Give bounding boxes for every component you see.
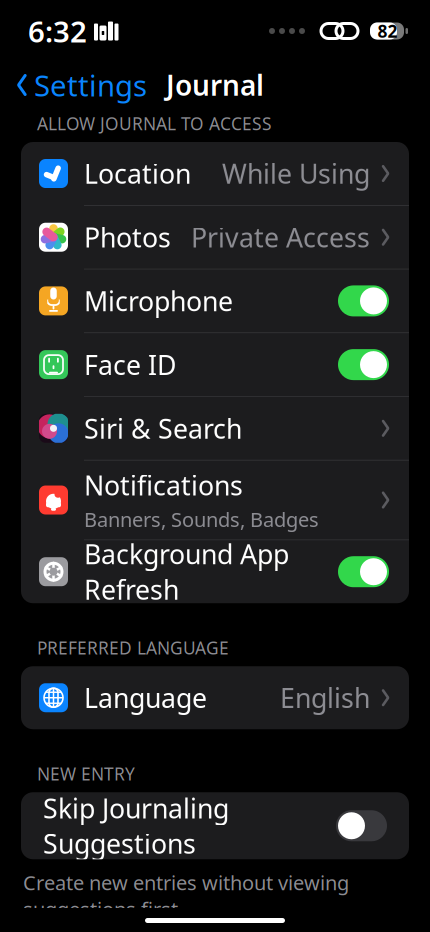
button[interactable]: Settings [8,57,147,112]
staticText: PREFERRED LANGUAGE [37,636,229,659]
staticText: Settings [34,65,147,104]
staticText: Banners, Sounds, Badges [84,506,319,532]
staticText: Journal [166,66,264,104]
staticText: 82 [377,19,397,42]
staticText: English [280,680,370,715]
staticText: Photos [84,219,171,255]
button[interactable]: Skip Journaling Suggestions [21,792,409,859]
button[interactable]: Siri & Search [21,397,409,460]
button[interactable]: Language [21,666,409,729]
staticText: Location [84,156,191,191]
staticText: 6:32 [28,11,87,50]
staticText: Face ID [84,347,176,382]
staticText: Create new entries without viewing sugge… [23,869,349,922]
staticText: Microphone [84,283,233,319]
staticText: Background App Refresh [84,536,289,607]
button[interactable]: Notifications [21,460,409,539]
button[interactable]: Location [21,142,409,205]
button[interactable]: Photos [21,206,409,269]
staticText: Skip Journaling Suggestions [43,790,229,861]
staticText: Language [84,680,207,715]
staticText: Private Access [191,219,370,255]
button[interactable]: Face ID [21,333,409,396]
button[interactable]: Background App Refresh [21,540,409,603]
staticText: Notifications [84,467,243,503]
staticText: Siri & Search [84,411,242,446]
staticText: ALLOW JOURNAL TO ACCESS [37,112,272,135]
staticText: NEW ENTRY [37,762,135,785]
button[interactable]: Microphone [21,269,409,332]
staticText: While Using [222,156,370,191]
